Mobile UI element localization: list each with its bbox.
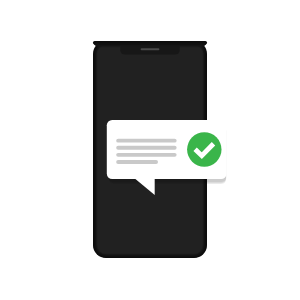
- button[interactable]: Message delivered confirmation: [0, 0, 300, 300]
